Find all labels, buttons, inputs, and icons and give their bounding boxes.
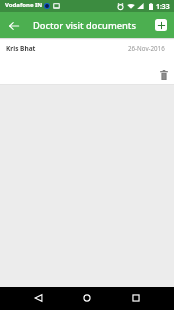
- button[interactable]: Back: [27, 288, 49, 310]
- staticText: Doctor visit documents: [33, 19, 136, 32]
- staticText: Vodafone IN: [5, 1, 43, 9]
- button[interactable]: Recent apps: [125, 288, 147, 310]
- button[interactable]: Kris Bhat: [0, 40, 174, 84]
- staticText: 26-Nov-2016: [128, 44, 165, 52]
- button[interactable]: Back: [0, 12, 28, 38]
- button[interactable]: Add document: [149, 13, 173, 37]
- button[interactable]: Delete: [157, 68, 171, 82]
- staticText: 1:33: [156, 2, 170, 11]
- button[interactable]: Home: [76, 288, 98, 310]
- staticText: Kris Bhat: [6, 44, 36, 53]
